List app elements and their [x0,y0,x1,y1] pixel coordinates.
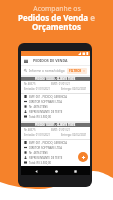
button[interactable]: Open navigation menu [24,59,28,63]
button[interactable]: New order [78,152,88,162]
staticText: PEDIDO 102030 - CLIENTE TESTE [35,77,76,81]
staticText: EMIT: 01/01/21 [51,128,70,132]
staticText: EMIT: 01/01/21 [51,82,70,86]
staticText: Emissão: 01/01/2021 [24,133,51,137]
staticText: Entrega: 02/02/2021 [61,133,87,137]
staticText: Entrega: 02/02/2021 [61,87,87,91]
staticText: FILTROS [69,69,82,73]
button[interactable]: PEDIDO 102031 - CLIENTE TESTE [21,123,90,167]
button[interactable]: Home [52,167,60,175]
staticText: Nº 4876 ITENS [29,105,48,109]
staticText: Nº 48375 [24,128,36,132]
staticText: Pedidos de Venda e [18,12,95,23]
staticText: Total: R$ 3.500,00 [29,161,52,165]
staticText: PEDIDO 102032 - CLIENTE TESTE [35,169,76,173]
staticText: Informe o nome/código [29,69,65,73]
staticText: PEDIDOS DE VENDA [33,58,68,63]
staticText: Nº 4876 ITENS [29,151,48,155]
staticText: PEDIDO 102031 - CLIENTE TESTE [35,123,76,127]
button[interactable]: Recent apps [71,167,79,175]
staticText: Orçamentos [32,21,81,32]
staticText: Nº 48375 [24,82,36,86]
button[interactable]: Back [32,167,40,175]
staticText: REPRESENTANTE DE TESTE [29,156,63,160]
staticText: DIRETOR SOFTWARE LTDA [29,146,62,150]
staticText: REPRESENTANTE DE TESTE [29,110,63,114]
staticText: Acompanhe os [33,4,81,13]
button[interactable]: FILTROS [67,68,87,74]
button[interactable]: PEDIDO 102032 - CLIENTE TESTE [21,169,90,175]
staticText: EMP. 001 - PEDIDO, GERENCIA [29,141,67,145]
staticText: DIRETOR SOFTWARE LTDA [29,100,62,104]
staticText: Total: R$ 3.500,00 [29,115,52,119]
button[interactable]: PEDIDO 102030 - CLIENTE TESTE [21,77,90,121]
staticText: Emissão: 01/01/2021 [24,87,51,91]
other: Search [24,69,27,72]
staticText: EMP. 001 - PEDIDO, GERENCIA [29,95,67,99]
